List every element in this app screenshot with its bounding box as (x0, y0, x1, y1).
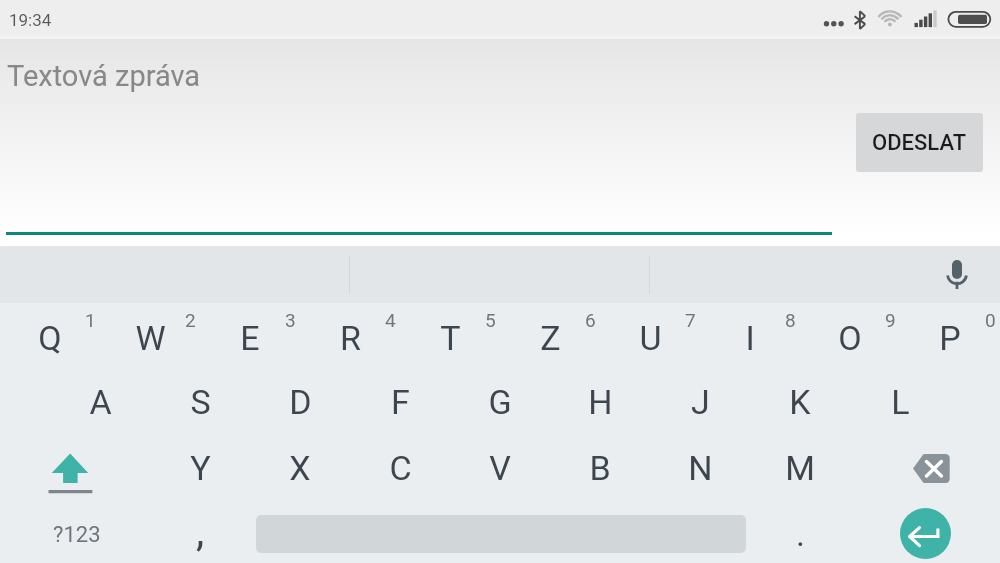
staticText: 8 (785, 309, 796, 331)
button[interactable]: R (300, 303, 400, 369)
staticText: N (688, 448, 713, 488)
staticText: 6 (585, 309, 596, 331)
staticText: 1 (85, 309, 96, 331)
staticText: M (785, 448, 815, 488)
staticText: T (440, 318, 461, 358)
button[interactable]: Voice input (917, 246, 997, 303)
button[interactable]: F (350, 369, 450, 435)
button[interactable]: G (450, 369, 550, 435)
staticText: 2 (185, 309, 196, 331)
button[interactable]: E (200, 303, 300, 369)
button[interactable]: J (650, 369, 750, 435)
staticText: , (196, 507, 205, 556)
button[interactable]: S (150, 369, 250, 435)
staticText: E (240, 318, 260, 358)
button[interactable]: C (350, 435, 450, 501)
button[interactable]: I (700, 303, 800, 369)
button[interactable]: N (650, 435, 750, 501)
button[interactable]: ODESLAT (856, 113, 983, 172)
staticText: J (691, 382, 710, 422)
staticText: Q (38, 318, 62, 358)
staticText: ODESLAT (872, 130, 967, 156)
staticText: B (589, 448, 611, 488)
staticText: Y (190, 448, 211, 488)
staticText: W (135, 318, 166, 358)
button[interactable]: V (450, 435, 550, 501)
button[interactable]: O (800, 303, 900, 369)
staticText: V (489, 448, 511, 488)
staticText: 5 (485, 309, 496, 331)
button[interactable]: . (750, 501, 850, 563)
button[interactable]: M (750, 435, 850, 501)
button[interactable]: K (750, 369, 850, 435)
button[interactable]: Backspace (880, 435, 980, 501)
button[interactable]: L (850, 369, 950, 435)
staticText: 4 (385, 309, 396, 331)
button[interactable]: P (900, 303, 1000, 369)
button[interactable]: Enter (900, 508, 951, 559)
staticText: A (89, 382, 112, 422)
staticText: F (391, 382, 410, 422)
staticText: Textová zpráva (7, 59, 201, 93)
button[interactable]: W (100, 303, 200, 369)
staticText: 3 (285, 309, 296, 331)
staticText: 9 (885, 309, 896, 331)
button[interactable]: Q (0, 303, 100, 369)
staticText: K (789, 382, 811, 422)
staticText: 0 (985, 309, 996, 331)
staticText: 7 (685, 309, 696, 331)
button[interactable]: X (250, 435, 350, 501)
staticText: 19:34 (9, 10, 52, 30)
button[interactable]: Y (150, 435, 250, 501)
staticText: U (639, 318, 662, 358)
button[interactable]: T (400, 303, 500, 369)
button[interactable]: A (50, 369, 150, 435)
staticText: L (891, 382, 910, 422)
button[interactable]: U (600, 303, 700, 369)
staticText: R (340, 318, 361, 358)
staticText: S (190, 382, 211, 422)
staticText: I (745, 318, 755, 358)
staticText: . (796, 514, 805, 554)
staticText: X (289, 448, 311, 488)
button[interactable]: Z (500, 303, 600, 369)
staticText: O (838, 318, 862, 358)
staticText: Z (540, 318, 561, 358)
staticText: C (389, 448, 412, 488)
staticText: D (289, 382, 312, 422)
staticText: H (588, 382, 613, 422)
button[interactable]: , (150, 501, 250, 563)
button[interactable]: Textová zpráva (6, 39, 833, 235)
button[interactable]: H (550, 369, 650, 435)
button[interactable]: D (250, 369, 350, 435)
staticText: ?123 (53, 522, 101, 548)
button[interactable]: ?123 (27, 504, 127, 563)
button[interactable]: Shift (20, 435, 120, 501)
staticText: P (939, 318, 961, 358)
staticText: G (488, 382, 512, 422)
button[interactable]: B (550, 435, 650, 501)
